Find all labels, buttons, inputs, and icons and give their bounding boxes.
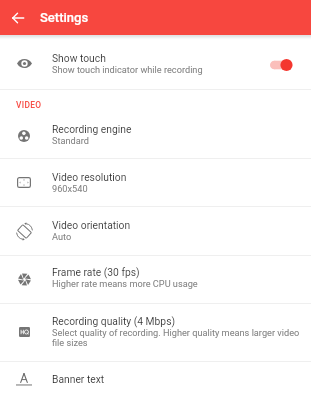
- button[interactable]: Back: [0, 0, 36, 35]
- staticText: Standard: [52, 135, 89, 146]
- staticText: Show touch: [52, 52, 106, 64]
- button[interactable]: Video orientation: [0, 207, 311, 255]
- button[interactable]: Recording quality (4 Mbps): [0, 304, 311, 361]
- staticText: Video resolution: [52, 171, 127, 183]
- staticText: Frame rate (30 fps): [52, 266, 140, 278]
- staticText: Recording engine: [52, 123, 132, 135]
- button[interactable]: Show touch: [0, 40, 311, 89]
- staticText: Higher rate means more CPU usage: [52, 278, 198, 289]
- button[interactable]: Show touch: [265, 52, 311, 78]
- staticText: Select quality of recording. Higher qual…: [52, 327, 308, 348]
- button[interactable]: Banner text: [0, 362, 311, 400]
- staticText: Video orientation: [52, 219, 131, 231]
- button[interactable]: Recording engine: [0, 116, 311, 158]
- staticText: Recording quality (4 Mbps): [52, 315, 176, 327]
- staticText: Banner text: [52, 373, 105, 385]
- button[interactable]: Frame rate (30 fps): [0, 256, 311, 303]
- staticText: 960x540: [52, 183, 88, 194]
- staticText: VIDEO: [16, 100, 42, 110]
- staticText: Settings: [40, 10, 89, 25]
- staticText: Auto: [52, 231, 72, 242]
- staticText: Show touch indicator while recording: [52, 64, 203, 75]
- button[interactable]: Video resolution: [0, 159, 311, 206]
